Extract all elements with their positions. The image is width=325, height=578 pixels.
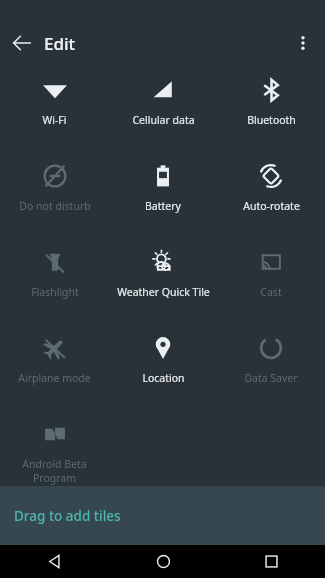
staticText: Location: [142, 371, 185, 385]
staticText: Bluetooth: [247, 113, 296, 127]
staticText: Wi-Fi: [42, 113, 67, 127]
button[interactable]: Flashlight: [0, 234, 109, 320]
button[interactable]: Home: [109, 545, 217, 578]
staticText: Cellular data: [132, 113, 195, 127]
button[interactable]: Auto-rotate: [217, 148, 325, 234]
staticText: Data Saver: [244, 371, 298, 385]
staticText: Do not disturb: [19, 199, 91, 213]
button[interactable]: Battery: [109, 148, 217, 234]
button[interactable]: Weather Quick Tile: [109, 234, 217, 320]
button[interactable]: Wi-Fi: [0, 62, 109, 148]
button[interactable]: Bluetooth: [217, 62, 325, 148]
button[interactable]: Cellular data: [109, 62, 217, 148]
button[interactable]: Android Beta Program: [0, 406, 109, 486]
button[interactable]: Data Saver: [217, 320, 325, 406]
staticText: Cast: [260, 285, 282, 299]
button[interactable]: Location: [109, 320, 217, 406]
button[interactable]: Do not disturb: [0, 148, 109, 234]
button[interactable]: Airplane mode: [0, 320, 109, 406]
staticText: Android Beta Program: [2, 457, 107, 485]
staticText: Weather Quick Tile: [117, 285, 210, 299]
button[interactable]: Cast: [217, 234, 325, 320]
button[interactable]: More options: [281, 24, 325, 62]
staticText: Edit: [44, 32, 76, 55]
staticText: Flashlight: [31, 285, 79, 299]
button[interactable]: Recents: [217, 545, 325, 578]
button[interactable]: Drag to add tiles: [0, 486, 325, 545]
staticText: Drag to add tiles: [14, 507, 121, 525]
staticText: Airplane mode: [18, 371, 91, 385]
button[interactable]: Back: [0, 24, 44, 62]
staticText: Battery: [145, 199, 181, 213]
staticText: Auto-rotate: [243, 199, 300, 213]
button[interactable]: Back: [0, 545, 109, 578]
